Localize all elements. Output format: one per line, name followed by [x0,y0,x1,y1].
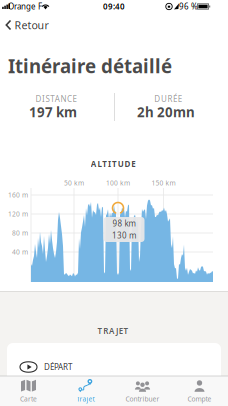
staticText: DISTANCE [35,94,77,104]
button[interactable]: Carte [3,376,53,405]
button[interactable]: Retour [2,15,51,35]
button[interactable]: Trajet [60,376,110,405]
staticText: Orange F [8,1,42,12]
staticText: 120 m [8,210,28,218]
staticText: DÉPART [44,362,72,372]
staticText: 98 km [112,218,135,229]
staticText: Itinéraire détaillé [8,54,172,78]
staticText: ALTITUDE [91,159,135,169]
staticText: 80 m [12,229,28,237]
staticText: 09:40 [103,1,125,12]
staticText: Retour [14,18,48,32]
staticText: Carte [20,395,37,403]
staticText: 96 % [179,1,198,12]
staticText: 2h 20mn [137,103,195,121]
button[interactable]: Contribuer [117,376,167,405]
staticText: Contribuer [125,395,159,403]
staticText: 160 m [8,191,28,199]
staticText: 40 m [12,248,28,256]
staticText: TRAJET [97,326,128,336]
button[interactable]: Compte [174,376,224,405]
staticText: Compte [187,395,211,403]
staticText: 150 km [151,179,175,187]
button[interactable]: DÉPART [7,343,221,383]
staticText: 100 km [106,179,130,187]
staticText: Trajet [76,395,94,403]
staticText: 197 km [29,103,77,121]
staticText: 50 km [64,179,84,187]
staticText: DURÉE [154,94,182,104]
staticText: 130 m [112,230,136,241]
